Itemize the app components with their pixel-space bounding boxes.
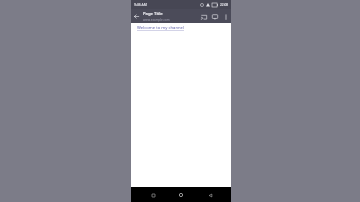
staticText: 9:46 AM [134,2,147,7]
button[interactable]: Recent apps [146,188,160,202]
button[interactable]: Cast [198,11,209,22]
staticText: Page Title [143,11,163,17]
staticText: Welcome to my channel [137,25,185,31]
button[interactable]: More options [220,11,231,22]
button[interactable]: Page Title [143,11,198,22]
staticText: www.example.com [143,18,170,22]
button[interactable]: Back [131,11,142,22]
button[interactable]: Back [203,188,217,202]
button[interactable]: Home [174,188,188,202]
button[interactable]: Comments [209,11,220,22]
button[interactable]: Welcome to my channel [137,25,185,31]
staticText: 22:08 [220,3,229,7]
